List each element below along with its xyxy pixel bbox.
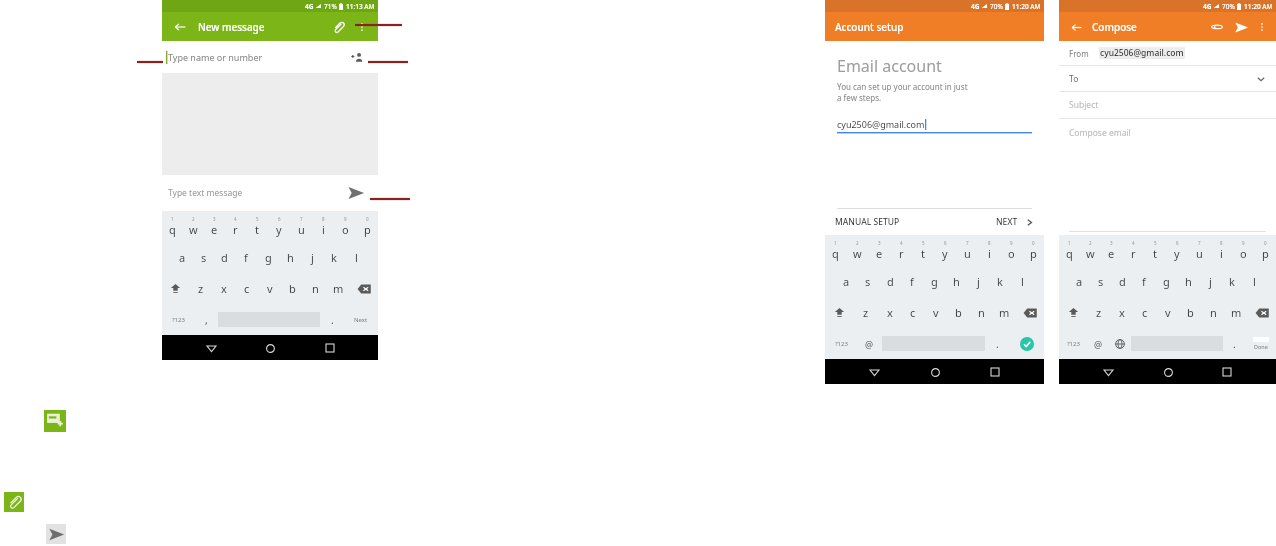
button[interactable]: Shift: [162, 273, 189, 304]
button[interactable]: x: [1110, 297, 1133, 328]
button[interactable]: Home: [259, 337, 281, 359]
button[interactable]: c: [901, 297, 924, 328]
button[interactable]: l: [1011, 266, 1033, 297]
button[interactable]: f: [1133, 266, 1155, 297]
button[interactable]: Shift: [825, 297, 854, 328]
button[interactable]: Add contact: [346, 46, 368, 68]
button[interactable]: 2: [846, 235, 868, 266]
button[interactable]: Home: [1157, 361, 1179, 383]
button[interactable]: ?123: [162, 304, 194, 335]
button[interactable]: 6: [934, 235, 956, 266]
button[interactable]: Home: [924, 361, 946, 383]
button[interactable]: n: [1202, 297, 1225, 328]
button[interactable]: 4: [890, 235, 912, 266]
button[interactable]: Shift: [1059, 297, 1087, 328]
button[interactable]: 4: [225, 211, 246, 242]
button[interactable]: c: [1133, 297, 1156, 328]
button[interactable]: 1: [162, 211, 183, 242]
button[interactable]: k: [323, 242, 345, 273]
button[interactable]: b: [281, 273, 304, 304]
button[interactable]: @: [857, 328, 882, 359]
button[interactable]: 0: [356, 211, 378, 242]
button[interactable]: 6: [1166, 235, 1188, 266]
button[interactable]: @: [1087, 328, 1109, 359]
button[interactable]: a: [835, 266, 857, 297]
button[interactable]: To: [1059, 66, 1276, 91]
button[interactable]: n: [304, 273, 327, 304]
button[interactable]: z: [1087, 297, 1110, 328]
button[interactable]: Recent apps: [319, 337, 341, 359]
button[interactable]: Send: [344, 181, 368, 205]
button[interactable]: Back: [1066, 17, 1086, 37]
button[interactable]: l: [345, 242, 367, 273]
button[interactable]: v: [258, 273, 281, 304]
button[interactable]: NEXT: [996, 216, 1034, 228]
button[interactable]: Subject: [1059, 92, 1276, 118]
button[interactable]: Next: [344, 304, 378, 335]
button[interactable]: h: [945, 266, 967, 297]
button[interactable]: 5: [912, 235, 934, 266]
button[interactable]: z: [854, 297, 878, 328]
button[interactable]: f: [235, 242, 257, 273]
button[interactable]: g: [923, 266, 945, 297]
button[interactable]: Attach: [1208, 18, 1226, 36]
button[interactable]: n: [970, 297, 993, 328]
button[interactable]: Change language: [1109, 328, 1131, 359]
button[interactable]: MANUAL SETUP: [835, 216, 900, 228]
button[interactable]: 5: [246, 211, 268, 242]
button[interactable]: m: [993, 297, 1016, 328]
button[interactable]: a: [172, 242, 193, 273]
button[interactable]: b: [947, 297, 970, 328]
button[interactable]: z: [189, 273, 212, 304]
button[interactable]: l: [1243, 266, 1265, 297]
button[interactable]: 2: [1080, 235, 1101, 266]
button[interactable]: ?123: [1059, 328, 1087, 359]
button[interactable]: Backspace: [1016, 297, 1044, 328]
button[interactable]: 1: [1059, 235, 1080, 266]
button[interactable]: From: [1059, 41, 1276, 65]
button[interactable]: d: [1111, 266, 1133, 297]
button[interactable]: 8: [312, 211, 334, 242]
button[interactable]: 2: [183, 211, 204, 242]
button[interactable]: v: [1156, 297, 1179, 328]
button[interactable]: Back: [1097, 361, 1119, 383]
button[interactable]: j: [301, 242, 323, 273]
button[interactable]: 8: [1210, 235, 1232, 266]
button[interactable]: Compose email: [1059, 119, 1276, 235]
button[interactable]: Attach: [328, 17, 348, 37]
button[interactable]: 1: [825, 235, 846, 266]
button[interactable]: 7: [290, 211, 312, 242]
button[interactable]: .: [1223, 328, 1245, 359]
button[interactable]: m: [327, 273, 350, 304]
button[interactable]: ?123: [825, 328, 857, 359]
button[interactable]: 7: [956, 235, 978, 266]
button[interactable]: g: [257, 242, 279, 273]
button[interactable]: Done: [1245, 328, 1276, 359]
button[interactable]: 9: [1232, 235, 1254, 266]
button[interactable]: 0: [1254, 235, 1276, 266]
button[interactable]: x: [212, 273, 235, 304]
button[interactable]: 4: [1122, 235, 1144, 266]
button[interactable]: Back: [863, 361, 885, 383]
button[interactable]: Backspace: [1248, 297, 1276, 328]
button[interactable]: Done: [1010, 328, 1044, 359]
button[interactable]: v: [924, 297, 947, 328]
button[interactable]: c: [235, 273, 258, 304]
button[interactable]: Back: [170, 17, 190, 37]
button[interactable]: s: [193, 242, 214, 273]
button[interactable]: .: [985, 328, 1010, 359]
button[interactable]: 5: [1144, 235, 1166, 266]
button[interactable]: b: [1179, 297, 1202, 328]
button[interactable]: 7: [1188, 235, 1210, 266]
button[interactable]: g: [1155, 266, 1177, 297]
button[interactable]: s: [857, 266, 879, 297]
button[interactable]: m: [1225, 297, 1248, 328]
button[interactable]: k: [1221, 266, 1243, 297]
button[interactable]: 3: [868, 235, 890, 266]
button[interactable]: j: [1199, 266, 1221, 297]
button[interactable]: h: [279, 242, 301, 273]
button[interactable]: Recent apps: [984, 361, 1006, 383]
button[interactable]: 8: [978, 235, 1000, 266]
